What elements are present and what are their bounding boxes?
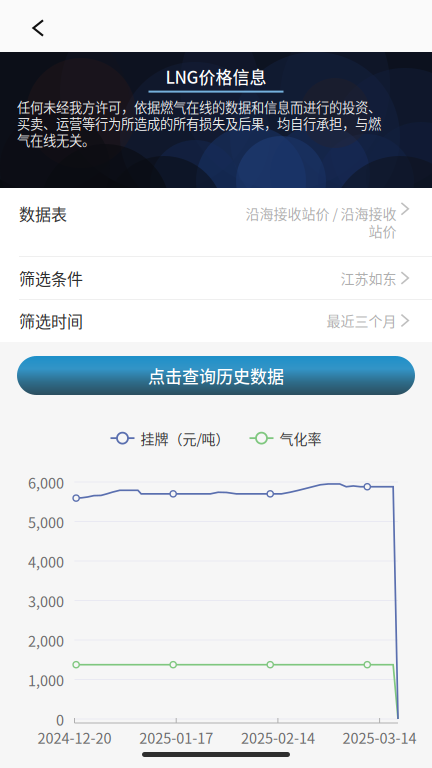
staticText: 6,000 [28,472,64,493]
staticText: 1,000 [28,669,64,690]
staticText: 2025-01-17 [139,727,213,748]
staticText: 数据表 [19,202,67,225]
staticText: 筛选条件 [19,266,83,290]
button[interactable]: 点击查询历史数据 [17,356,415,395]
staticText: 任何未经我方许可，依据燃气在线的数据和信息而进行的投资、 买卖、运营等行为所造成… [17,97,381,149]
staticText: 2025-02-14 [241,727,315,748]
staticText: 气化率 [279,428,321,448]
staticText: 5,000 [28,511,64,532]
button[interactable]: 筛选条件 [0,257,432,300]
staticText: 3,000 [28,590,64,611]
button[interactable]: Back [0,6,64,50]
staticText: 0 [56,709,64,730]
staticText: 沿海接收站价 / 沿海接收 站价 [245,203,396,241]
staticText: 2025-03-14 [343,727,417,748]
staticText: 2,000 [28,630,64,651]
staticText: 点击查询历史数据 [148,363,284,388]
staticText: 最近三个月 [326,310,396,331]
staticText: LNG价格信息 [165,64,266,89]
staticText: 筛选时间 [19,309,83,332]
staticText: 4,000 [28,551,64,572]
staticText: 挂牌（元/吨） [140,428,229,448]
button[interactable]: 数据表 [0,188,432,257]
button[interactable]: 筛选时间 [0,300,432,342]
staticText: 江苏如东 [340,268,396,288]
staticText: 2024-12-20 [37,727,111,748]
